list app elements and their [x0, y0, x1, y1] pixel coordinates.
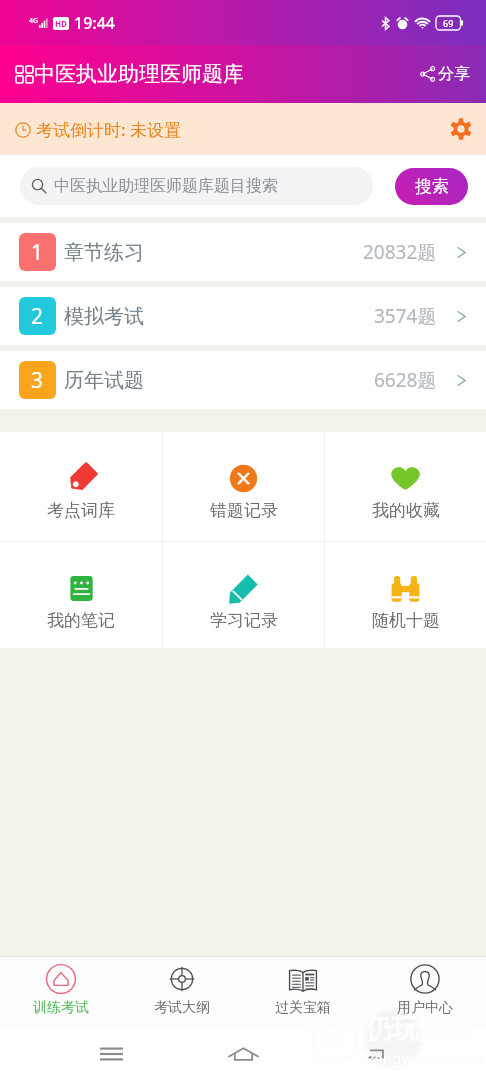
button[interactable]: 训练考试 [0, 957, 121, 1017]
staticText: 20832题 [363, 239, 437, 265]
staticText: 训练考试 [33, 999, 89, 1017]
staticText: 搜索 [415, 176, 449, 197]
button[interactable]: 错题记录 [163, 432, 324, 521]
staticText: 用户中心 [397, 999, 453, 1017]
staticText: 我的笔记 [47, 610, 115, 631]
button[interactable]: 我的收藏 [325, 432, 486, 521]
staticText: 随机十题 [372, 610, 440, 631]
button[interactable]: 用户中心 [364, 957, 486, 1017]
button[interactable]: 搜索 [395, 168, 468, 205]
button[interactable]: 学习记录 [163, 542, 324, 631]
staticText: 4G [29, 16, 39, 26]
button[interactable]: 随机十题 [325, 542, 486, 631]
staticText: 2 [31, 302, 44, 331]
staticText: 考点词库 [47, 500, 115, 521]
staticText: 模拟考试 [64, 304, 144, 329]
staticText: 分享 [438, 64, 470, 84]
staticText: 考试大纲 [154, 999, 210, 1017]
staticText: 中医执业助理医师题库 [34, 61, 244, 87]
button[interactable]: Back [354, 1032, 398, 1076]
button[interactable]: 分享 [416, 58, 474, 90]
staticText: 69 [443, 17, 454, 29]
staticText: 中医执业助理医师题库题目搜索 [54, 176, 278, 196]
staticText: 错题记录 [210, 500, 278, 521]
staticText: 我的收藏 [372, 500, 440, 521]
staticText: 6628题 [374, 367, 437, 393]
staticText: 3 [31, 366, 44, 395]
button[interactable]: 考点词库 [0, 432, 162, 521]
staticText: 历年试题 [64, 368, 144, 393]
staticText: 学习记录 [210, 610, 278, 631]
staticText: HD [55, 18, 67, 29]
button[interactable]: 2 [0, 287, 486, 345]
button[interactable]: 1 [0, 223, 486, 281]
button[interactable]: 3 [0, 351, 486, 409]
staticText: 19:44 [74, 12, 115, 34]
staticText: 3574题 [374, 303, 437, 329]
button[interactable]: 过关宝箱 [242, 957, 364, 1017]
button[interactable]: 我的笔记 [0, 542, 162, 631]
button[interactable]: Recents [89, 1032, 133, 1076]
button[interactable]: Home [221, 1032, 265, 1076]
staticText: 考试倒计时: 未设置 [36, 118, 182, 141]
staticText: 章节练习 [64, 240, 144, 265]
staticText: 过关宝箱 [275, 999, 331, 1017]
staticText: 1 [31, 238, 44, 267]
staticText: Rengwan Games [365, 1048, 484, 1068]
button[interactable]: 考试大纲 [121, 957, 242, 1017]
staticText: 仍玩游戏 [365, 1012, 473, 1046]
button[interactable]: 设置 [447, 115, 475, 143]
button[interactable]: 中医执业助理医师题库题目搜索 [20, 167, 373, 205]
